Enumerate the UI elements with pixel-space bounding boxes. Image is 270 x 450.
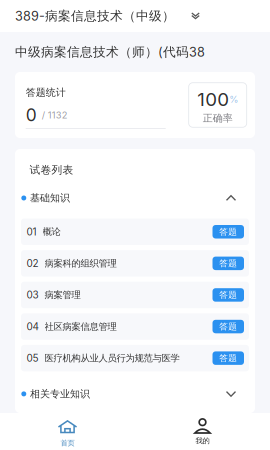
staticText: 社区病案信息管理 xyxy=(44,321,116,332)
staticText: 基础知识 xyxy=(30,192,70,204)
staticText: 病案管理 xyxy=(44,289,80,301)
button[interactable]: 相关专业知识 xyxy=(21,387,249,401)
staticText: 答题 xyxy=(219,258,237,269)
button[interactable]: 首页 xyxy=(0,413,135,450)
staticText: 答题 xyxy=(219,226,237,237)
staticText: 0 xyxy=(26,104,37,125)
staticText: 病案科的组织管理 xyxy=(44,257,116,269)
staticText: 试卷列表 xyxy=(29,163,73,177)
button[interactable]: 04 xyxy=(21,313,249,340)
button[interactable]: 389-病案信息技术（中级） xyxy=(0,0,270,32)
button[interactable]: 02 xyxy=(21,250,249,277)
staticText: 医疗机构从业人员行为规范与医学 xyxy=(44,352,179,364)
staticText: 我的 xyxy=(195,436,209,445)
staticText: 03 xyxy=(26,289,38,301)
staticText: 100 xyxy=(197,88,229,111)
staticText: 答题统计 xyxy=(26,86,66,99)
staticText: 相关专业知识 xyxy=(30,388,90,400)
button[interactable]: 05 xyxy=(21,345,249,371)
staticText: % xyxy=(229,94,238,105)
staticText: 概论 xyxy=(42,226,60,238)
button[interactable]: 03 xyxy=(21,282,249,308)
staticText: 389-病案信息技术（中级） xyxy=(15,8,175,24)
staticText: 正确率 xyxy=(203,112,233,124)
staticText: 04 xyxy=(26,320,38,333)
button[interactable]: 01 xyxy=(21,218,249,245)
staticText: 01 xyxy=(26,226,36,238)
staticText: 02 xyxy=(26,257,38,269)
staticText: 中级病案信息技术（师）(代码38 xyxy=(15,44,205,60)
staticText: 答题 xyxy=(219,321,237,332)
staticText: 首页 xyxy=(60,438,74,448)
staticText: 05 xyxy=(26,352,38,364)
staticText: 答题 xyxy=(219,353,237,364)
staticText: / 1132 xyxy=(42,109,68,121)
button[interactable]: 基础知识 xyxy=(21,191,249,205)
button[interactable]: 我的 xyxy=(135,413,270,450)
staticText: 答题 xyxy=(219,289,237,300)
